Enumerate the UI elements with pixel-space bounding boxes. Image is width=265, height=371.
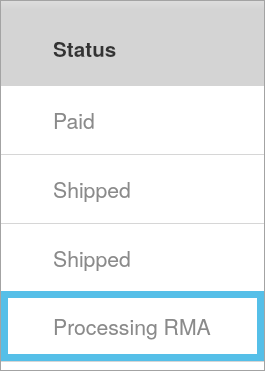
button[interactable]: Processing RMA: [8, 298, 257, 354]
staticText: Shipped: [53, 243, 131, 273]
staticText: Paid: [53, 105, 95, 135]
button[interactable]: Status: [0, 1, 265, 86]
button[interactable]: Paid: [0, 86, 265, 154]
staticText: Status: [53, 34, 117, 64]
staticText: Shipped: [53, 174, 131, 204]
button[interactable]: Shipped: [0, 155, 265, 223]
staticText: Processing RMA: [53, 311, 211, 341]
button[interactable]: Shipped: [0, 224, 265, 291]
